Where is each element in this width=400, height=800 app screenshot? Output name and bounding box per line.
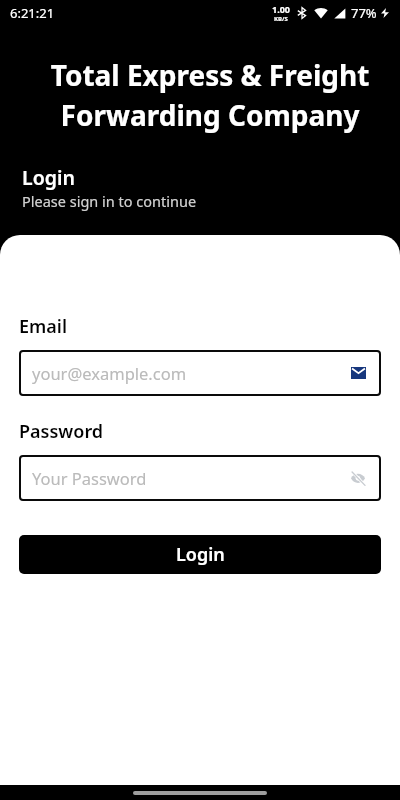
staticText: KB/S xyxy=(274,15,288,23)
other: Mobile signal xyxy=(333,7,346,20)
button[interactable]: Login xyxy=(19,535,381,574)
staticText: Total Express & Freight Forwarding Compa… xyxy=(20,56,400,135)
other: Wi-Fi xyxy=(314,6,328,20)
staticText: Login xyxy=(22,164,75,191)
staticText: Please sign in to continue xyxy=(22,191,197,211)
staticText: Login xyxy=(176,542,225,567)
button[interactable]: Show password xyxy=(346,466,370,490)
button[interactable]: Your Password xyxy=(19,455,381,501)
button[interactable]: your@example.com xyxy=(19,350,381,396)
staticText: your@example.com xyxy=(32,362,187,384)
staticText: Your Password xyxy=(32,467,147,489)
staticText: Password xyxy=(19,419,104,444)
other: Charging xyxy=(380,8,390,18)
button[interactable]: Email address xyxy=(346,361,370,385)
staticText: 6:21:21 xyxy=(10,4,55,22)
staticText: Email xyxy=(19,314,68,339)
staticText: 77% xyxy=(351,4,377,22)
other: Bluetooth xyxy=(296,7,308,19)
staticText: 1.00 xyxy=(272,3,290,15)
